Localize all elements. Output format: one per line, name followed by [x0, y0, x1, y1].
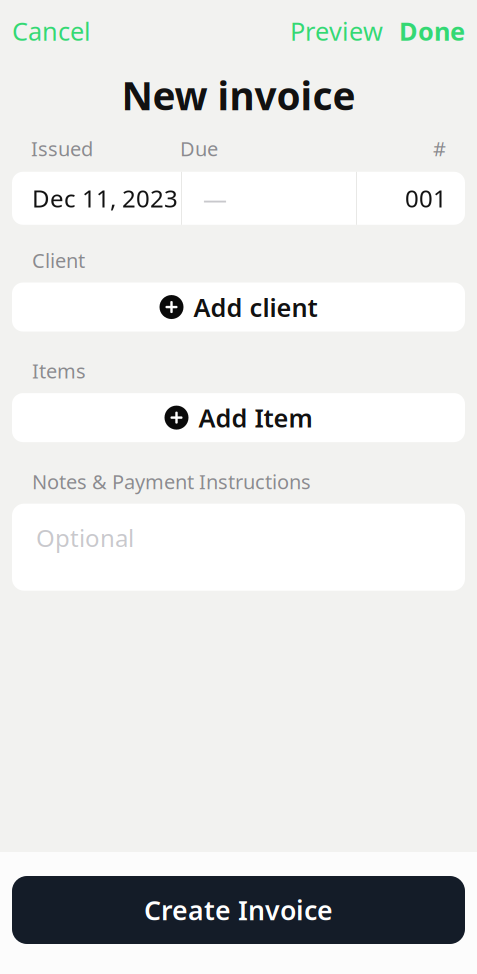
staticText: Items [32, 357, 86, 384]
button[interactable]: Add client [12, 282, 465, 331]
staticText: New invoice [121, 70, 355, 121]
staticText: Dec 11, 2023 [32, 182, 178, 214]
staticText: Done [399, 14, 465, 48]
staticText: Notes & Payment Instructions [32, 468, 311, 495]
button[interactable]: Create Invoice [12, 876, 465, 944]
button[interactable]: Dec 11, 2023 [12, 172, 181, 225]
staticText: Create Invoice [144, 892, 333, 928]
staticText: Issued [31, 135, 93, 162]
button[interactable]: Add Item [12, 393, 465, 442]
staticText: 001 [405, 182, 447, 214]
button[interactable]: Done [391, 6, 477, 56]
staticText: Optional [36, 522, 134, 554]
button[interactable]: Cancel [0, 6, 103, 56]
button[interactable]: 001 [357, 172, 465, 225]
staticText: # [433, 135, 446, 162]
staticText: Add Item [198, 401, 312, 434]
button[interactable]: Preview [282, 6, 391, 56]
staticText: Issued [174, 167, 236, 193]
staticText: Due [180, 135, 218, 162]
staticText: Cancel [12, 14, 91, 48]
staticText: Add client [193, 290, 317, 324]
staticText: Preview [290, 14, 383, 48]
button[interactable]: — [182, 172, 356, 225]
button[interactable]: Notes and payment instructions [12, 504, 465, 591]
staticText: Client [32, 247, 85, 274]
staticText: — [203, 182, 227, 214]
